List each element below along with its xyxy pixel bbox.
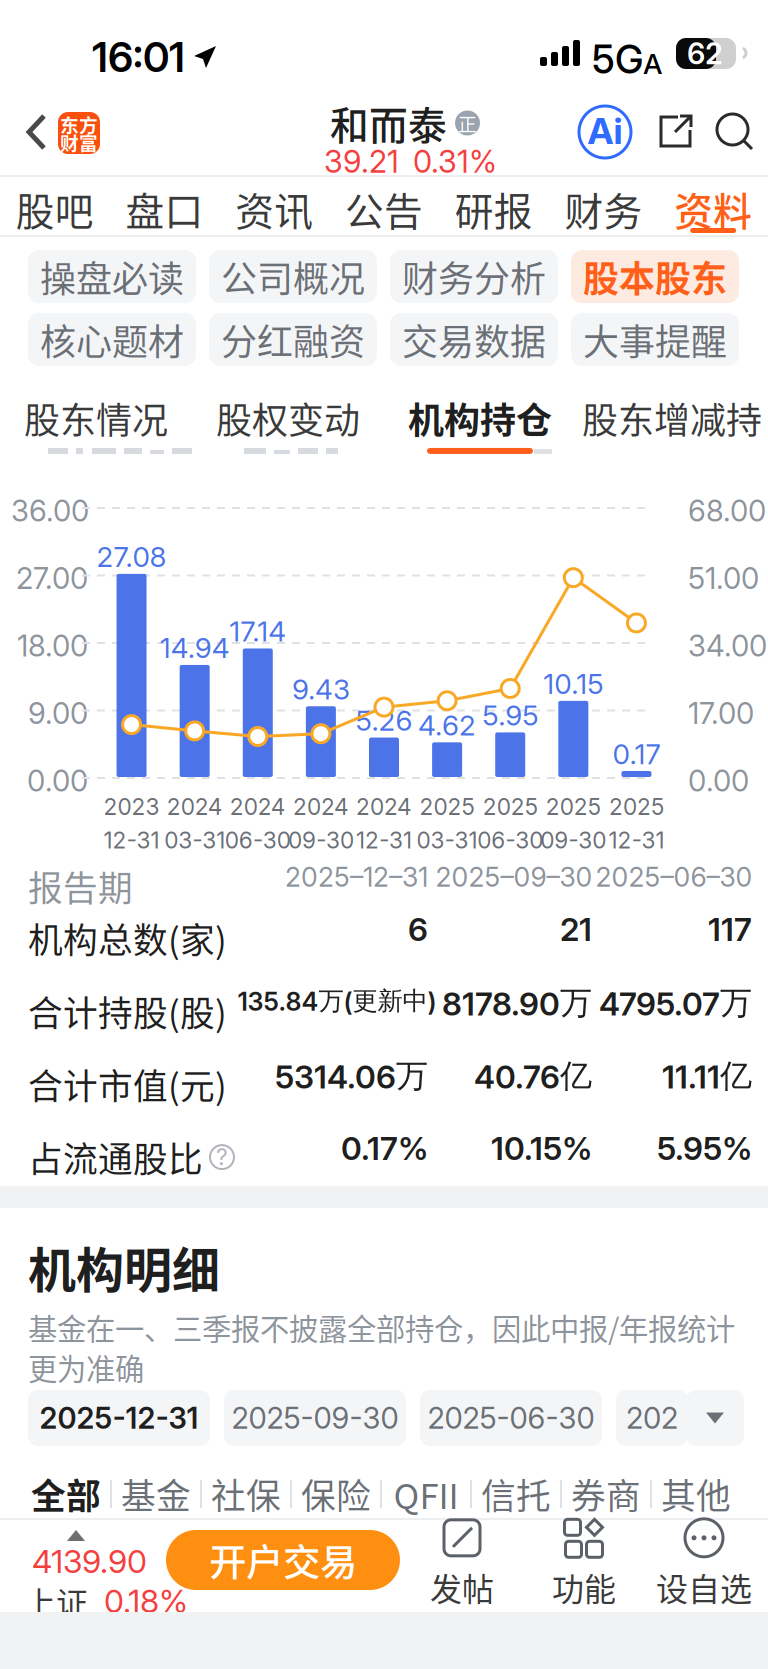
- staticText: 股东情况: [24, 392, 168, 444]
- staticText: 上证: [24, 1578, 88, 1624]
- button[interactable]: 其他: [652, 1466, 740, 1522]
- button[interactable]: 社保: [202, 1466, 290, 1522]
- staticText: 09-30: [540, 826, 606, 854]
- staticText: 基金: [121, 1469, 191, 1519]
- staticText: 东方: [60, 110, 98, 137]
- staticText: 202: [626, 1400, 678, 1436]
- staticText: ?: [216, 1143, 228, 1171]
- button[interactable]: 更多日期: [686, 1390, 744, 1446]
- button[interactable]: 东方财富: [58, 112, 100, 154]
- button[interactable]: 券商: [562, 1466, 650, 1522]
- button[interactable]: 全部: [22, 1466, 110, 1522]
- staticText: 6: [408, 910, 428, 949]
- button[interactable]: 开户交易: [166, 1530, 400, 1590]
- staticText: 5G: [592, 36, 643, 83]
- staticText: 2025-12-31: [39, 1400, 198, 1436]
- staticText: 8178.90万: [442, 983, 592, 1023]
- button[interactable]: 保险: [292, 1466, 380, 1522]
- button[interactable]: 分红融资: [209, 313, 377, 366]
- staticText: 合计持股(股): [28, 986, 227, 1036]
- button[interactable]: 功能: [530, 1526, 638, 1602]
- staticText: 信托: [481, 1469, 551, 1519]
- staticText: 12-31: [104, 826, 160, 854]
- button[interactable]: 4139.90: [22, 1524, 166, 1610]
- button[interactable]: AI 助手: [578, 105, 632, 159]
- staticText: 10.15: [543, 667, 603, 701]
- staticText: 资讯: [235, 181, 313, 237]
- staticText: 开户交易: [209, 1533, 357, 1587]
- staticText: 09-30: [288, 826, 354, 854]
- staticText: 03-31: [417, 826, 478, 854]
- button[interactable]: 盘口: [110, 176, 219, 236]
- staticText: 21: [560, 910, 592, 949]
- staticText: 62: [687, 36, 723, 71]
- staticText: 51.00: [688, 560, 759, 596]
- staticText: 设自选: [656, 1564, 752, 1610]
- button[interactable]: 交易数据: [390, 313, 558, 366]
- staticText: 机构明细: [28, 1232, 220, 1301]
- button[interactable]: 2025-09-30: [224, 1390, 406, 1446]
- button[interactable]: 2025-06-30: [420, 1390, 602, 1446]
- staticText: 股本股东: [583, 250, 727, 302]
- button[interactable]: 财务分析: [390, 250, 558, 303]
- button[interactable]: 基金: [112, 1466, 200, 1522]
- staticText: 财富: [60, 128, 98, 155]
- staticText: 操盘必读: [40, 250, 184, 302]
- button[interactable]: 发帖: [408, 1526, 516, 1602]
- button[interactable]: 研报: [439, 176, 549, 236]
- staticText: 资料: [674, 181, 752, 237]
- button[interactable]: 股本股东: [571, 250, 739, 303]
- button[interactable]: 信托: [472, 1466, 560, 1522]
- staticText: 68.00: [688, 493, 766, 528]
- staticText: 0.00: [27, 763, 88, 798]
- staticText: 和而泰: [330, 95, 447, 151]
- button[interactable]: 股权变动: [192, 376, 384, 448]
- button[interactable]: 股东增减持: [576, 376, 768, 448]
- staticText: 27.00: [16, 560, 88, 596]
- button[interactable]: 财务: [549, 176, 658, 236]
- staticText: 17.00: [688, 695, 754, 731]
- button[interactable]: 202: [616, 1390, 688, 1446]
- button[interactable]: 大事提醒: [571, 313, 739, 366]
- staticText: 功能: [552, 1564, 616, 1610]
- button[interactable]: 机构持仓: [384, 376, 576, 448]
- staticText: 盘口: [126, 181, 204, 237]
- staticText: Ai: [587, 109, 622, 153]
- button[interactable]: 设自选: [648, 1526, 760, 1602]
- staticText: 2025: [609, 793, 664, 820]
- staticText: A: [643, 47, 662, 81]
- button[interactable]: 股东情况: [0, 376, 192, 448]
- staticText: 0.18%: [104, 1582, 188, 1620]
- button[interactable]: 公告: [329, 176, 439, 236]
- staticText: 2025-09-30: [231, 1400, 398, 1436]
- button[interactable]: 返回: [16, 110, 60, 154]
- button[interactable]: 资料: [658, 176, 768, 236]
- staticText: 0.31%: [413, 143, 497, 180]
- button[interactable]: 资讯: [219, 176, 329, 236]
- button[interactable]: 分享: [654, 109, 698, 153]
- staticText: 券商: [571, 1469, 641, 1519]
- staticText: 2024: [356, 793, 412, 820]
- staticText: 交易数据: [402, 313, 546, 365]
- button[interactable]: 操盘必读: [28, 250, 196, 303]
- staticText: 公司概况: [221, 250, 365, 302]
- staticText: 2025–12–31: [285, 861, 428, 893]
- staticText: 5314.06万: [275, 1056, 428, 1096]
- staticText: 研报: [455, 181, 533, 237]
- staticText: 0.17: [612, 737, 660, 771]
- staticText: 股东增减持: [582, 392, 762, 444]
- staticText: 5.95%: [657, 1129, 752, 1168]
- staticText: 4139.90: [32, 1542, 147, 1581]
- staticText: 2025–06–30: [595, 861, 752, 893]
- button[interactable]: QFII: [382, 1466, 470, 1522]
- button[interactable]: 搜索: [712, 109, 756, 153]
- staticText: 机构持仓: [408, 392, 552, 444]
- staticText: 12-31: [608, 826, 664, 854]
- staticText: 更为准确: [28, 1346, 144, 1388]
- button[interactable]: 2025-12-31: [28, 1390, 210, 1446]
- button[interactable]: 股吧: [0, 176, 110, 236]
- button[interactable]: 核心题材: [28, 313, 196, 366]
- staticText: 2025: [483, 793, 538, 820]
- staticText: 16:01: [92, 32, 185, 82]
- button[interactable]: 公司概况: [209, 250, 377, 303]
